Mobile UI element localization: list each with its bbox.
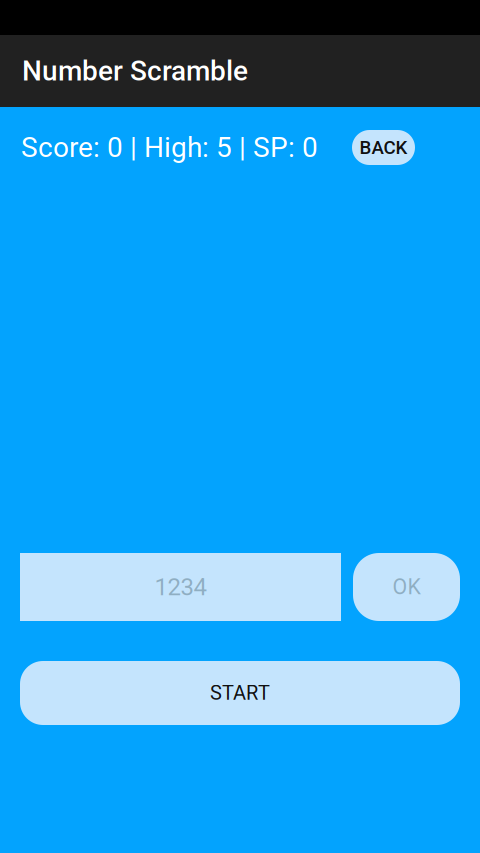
button[interactable]: Guess entry field [20,553,341,621]
button[interactable]: OK [353,553,460,621]
staticText: START [210,681,270,705]
button[interactable]: BACK [352,130,415,165]
staticText: OK [392,574,420,599]
staticText: Number Scramble [22,55,248,87]
button[interactable]: START [20,661,460,725]
staticText: 1234 [154,573,206,601]
staticText: BACK [359,137,407,158]
staticText: Score: 0 | High: 5 | SP: 0 [21,131,318,164]
